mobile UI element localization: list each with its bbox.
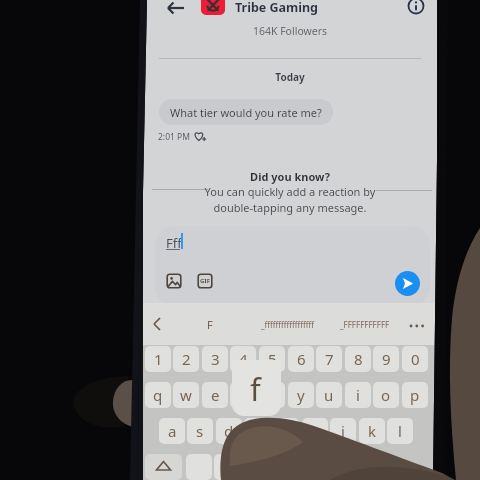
button[interactable]: 4	[230, 346, 256, 372]
button[interactable]: F	[196, 313, 224, 335]
button[interactable]: j	[330, 418, 356, 444]
staticText: e	[211, 385, 220, 405]
staticText: f	[254, 421, 260, 441]
button[interactable]: 7	[316, 346, 342, 372]
staticText: 5	[268, 349, 277, 369]
staticText: i	[356, 385, 360, 405]
button[interactable]: What tier would you rate me?	[159, 99, 333, 125]
button[interactable]: _FFFFFFFFFFF	[325, 313, 405, 335]
staticText: w	[180, 385, 192, 405]
staticText: 6	[297, 349, 306, 369]
staticText: 9	[382, 349, 391, 369]
staticText: 4	[239, 349, 248, 369]
staticText: What tier would you rate me?	[170, 105, 322, 120]
staticText: Did you know?	[143, 169, 437, 184]
button[interactable]: Previous suggestions	[149, 316, 165, 332]
button[interactable]: e	[202, 382, 228, 408]
staticText: q	[153, 385, 163, 405]
staticText: o	[381, 385, 391, 405]
staticText: 7	[325, 349, 334, 369]
button[interactable]: l	[387, 418, 413, 444]
staticText: p	[410, 385, 420, 405]
button[interactable]: GIF	[195, 271, 215, 291]
button[interactable]: y	[288, 382, 314, 408]
button[interactable]: 1	[145, 346, 171, 372]
staticText: Tribe Gaming	[235, 0, 319, 16]
button[interactable]: 5	[259, 346, 285, 372]
staticText: 164K Followers	[143, 24, 437, 38]
button[interactable]: Add reaction	[193, 129, 207, 143]
button[interactable]: p	[402, 382, 428, 408]
button[interactable]: Key	[357, 454, 383, 480]
button[interactable]: 9	[373, 346, 399, 372]
staticText: s	[196, 421, 204, 441]
button[interactable]: d	[216, 418, 242, 444]
staticText: 1	[154, 349, 163, 369]
staticText: 2	[182, 349, 191, 369]
staticText: Fff	[166, 234, 182, 252]
button[interactable]: Key	[186, 454, 212, 480]
button[interactable]: r	[230, 382, 256, 408]
button[interactable]: Send	[395, 271, 420, 296]
button[interactable]: More options	[407, 316, 427, 336]
button[interactable]: h	[302, 418, 328, 444]
button[interactable]: 3	[202, 346, 228, 372]
staticText: 8	[354, 349, 363, 369]
staticText: l	[398, 421, 402, 441]
button[interactable]: t	[259, 382, 285, 408]
button[interactable]: o	[373, 382, 399, 408]
button[interactable]: k	[359, 418, 385, 444]
staticText: 3	[211, 349, 220, 369]
button[interactable]: g	[273, 418, 299, 444]
button[interactable]: 6	[288, 346, 314, 372]
button[interactable]: Info	[403, 0, 429, 19]
button[interactable]: f	[244, 418, 270, 444]
button[interactable]: a	[159, 418, 185, 444]
button[interactable]: i	[345, 382, 371, 408]
staticText: _FFFFFFFFFFF	[340, 319, 390, 330]
button[interactable]: 0	[402, 346, 428, 372]
button[interactable]: Key	[214, 454, 240, 480]
button[interactable]: Key	[329, 454, 355, 480]
staticText: a	[168, 421, 177, 441]
staticText: d	[224, 421, 234, 441]
button[interactable]: _ffffffffffffffffff	[249, 313, 327, 335]
staticText: h	[310, 421, 320, 441]
staticText: _ffffffffffffffffff	[261, 319, 315, 330]
button[interactable]: 2	[173, 346, 199, 372]
staticText: 0	[411, 349, 420, 369]
button[interactable]: Key	[243, 454, 269, 480]
staticText: Today	[143, 70, 437, 84]
button[interactable]: q	[145, 382, 171, 408]
staticText: F	[207, 317, 213, 332]
button[interactable]: Profile picture	[201, 0, 225, 15]
staticText: f	[250, 368, 261, 410]
staticText: g	[281, 421, 291, 441]
staticText: y	[297, 385, 305, 405]
button[interactable]: 8	[345, 346, 371, 372]
staticText: u	[324, 385, 334, 405]
staticText: You can quickly add a reaction by double…	[143, 184, 437, 215]
staticText: 2:01 PM	[158, 131, 190, 143]
button[interactable]: Gallery	[164, 271, 184, 291]
button[interactable]: u	[316, 382, 342, 408]
button[interactable]: Shift	[145, 454, 182, 480]
staticText: k	[368, 421, 377, 441]
button[interactable]: w	[173, 382, 199, 408]
button[interactable]: s	[187, 418, 213, 444]
staticText: j	[341, 421, 345, 441]
staticText: GIF	[200, 277, 210, 285]
button[interactable]: Back	[162, 0, 190, 22]
